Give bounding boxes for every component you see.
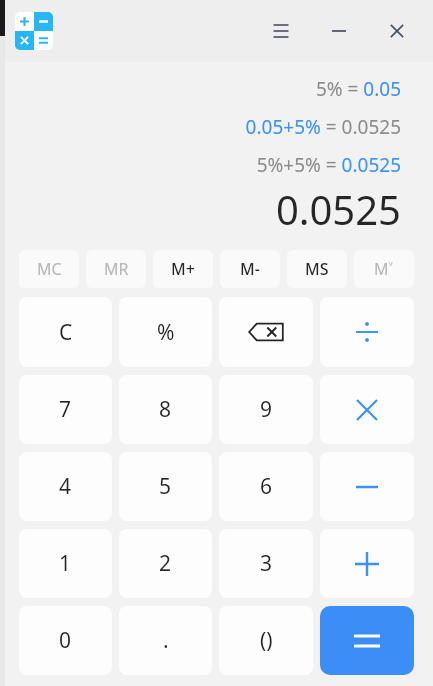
staticText: MS [305,258,329,280]
button[interactable]: 4 [19,452,112,521]
staticText: 1 [59,549,72,578]
staticText: 9 [260,395,273,424]
staticText: 5% = 0.05 [315,76,401,102]
staticText: 7 [59,395,72,424]
staticText: 8 [159,395,172,424]
button[interactable]: 0 [19,606,112,675]
staticText: 6 [260,472,273,501]
staticText: 0.05+5% = 0.0525 [245,114,401,140]
staticText: M- [240,258,260,280]
button[interactable]: Minimize [309,9,369,53]
button[interactable]: Subtract [320,452,414,521]
button[interactable]: 9 [219,375,313,444]
staticText: M+ [171,258,195,280]
button[interactable]: . [119,606,212,675]
button[interactable]: Add [320,529,414,598]
button[interactable]: M+ [153,250,213,288]
staticText: 0.0525 [275,182,401,236]
staticText: M˅ [374,258,394,280]
staticText: 5%+5% = 0.0525 [256,152,401,178]
button[interactable]: MC [19,250,79,288]
staticText: MR [104,258,129,280]
button[interactable]: 7 [19,375,112,444]
staticText: () [260,626,273,655]
staticText: 5 [159,472,172,501]
button[interactable]: Menu [253,9,309,53]
staticText: . [163,626,169,655]
staticText: C [59,318,73,347]
button[interactable]: 2 [119,529,212,598]
button[interactable]: Backspace [219,297,313,367]
staticText: 2 [159,549,172,578]
staticText: MC [37,258,62,280]
staticText: % [157,318,175,347]
button[interactable]: M˅ [354,250,414,288]
button[interactable]: 1 [19,529,112,598]
button[interactable]: Calculator [15,12,53,50]
button[interactable]: M- [220,250,280,288]
button[interactable]: Equals [320,606,414,675]
button[interactable]: Divide [320,297,414,367]
button[interactable]: C [19,297,112,367]
button[interactable]: () [219,606,313,675]
staticText: 4 [59,472,72,501]
staticText: 3 [260,549,273,578]
button[interactable]: 3 [219,529,313,598]
button[interactable]: MR [86,250,146,288]
button[interactable]: % [119,297,212,367]
button[interactable]: 8 [119,375,212,444]
button[interactable]: Close [369,9,425,53]
button[interactable]: Multiply [320,375,414,444]
button[interactable]: 5 [119,452,212,521]
staticText: 0 [59,626,72,655]
button[interactable]: 6 [219,452,313,521]
button[interactable]: MS [287,250,347,288]
